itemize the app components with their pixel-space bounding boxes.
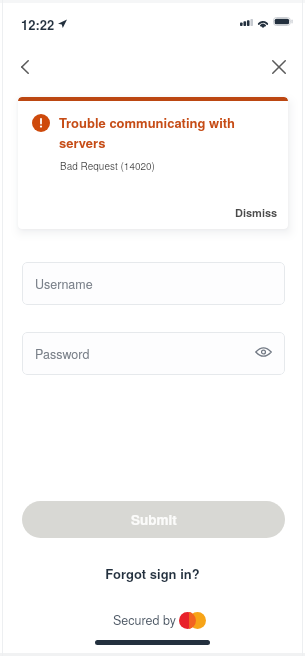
staticText: Username	[35, 275, 93, 293]
staticText: Bad Request (14020)	[60, 159, 155, 173]
button[interactable]: Forgot sign in?	[95, 560, 210, 587]
staticText: Password	[35, 345, 90, 363]
button[interactable]: Password	[22, 332, 285, 375]
button[interactable]: Close	[260, 48, 298, 86]
staticText: Submit	[131, 510, 177, 529]
staticText: Secured by	[113, 611, 176, 629]
button[interactable]: Dismiss	[231, 203, 282, 223]
button[interactable]: Show password	[248, 337, 278, 367]
staticText: Trouble communicating with servers	[59, 113, 271, 152]
button[interactable]: Back	[6, 48, 44, 86]
staticText: 12:22	[21, 15, 55, 34]
button[interactable]: Username	[22, 262, 285, 305]
button[interactable]: Submit	[22, 501, 285, 538]
